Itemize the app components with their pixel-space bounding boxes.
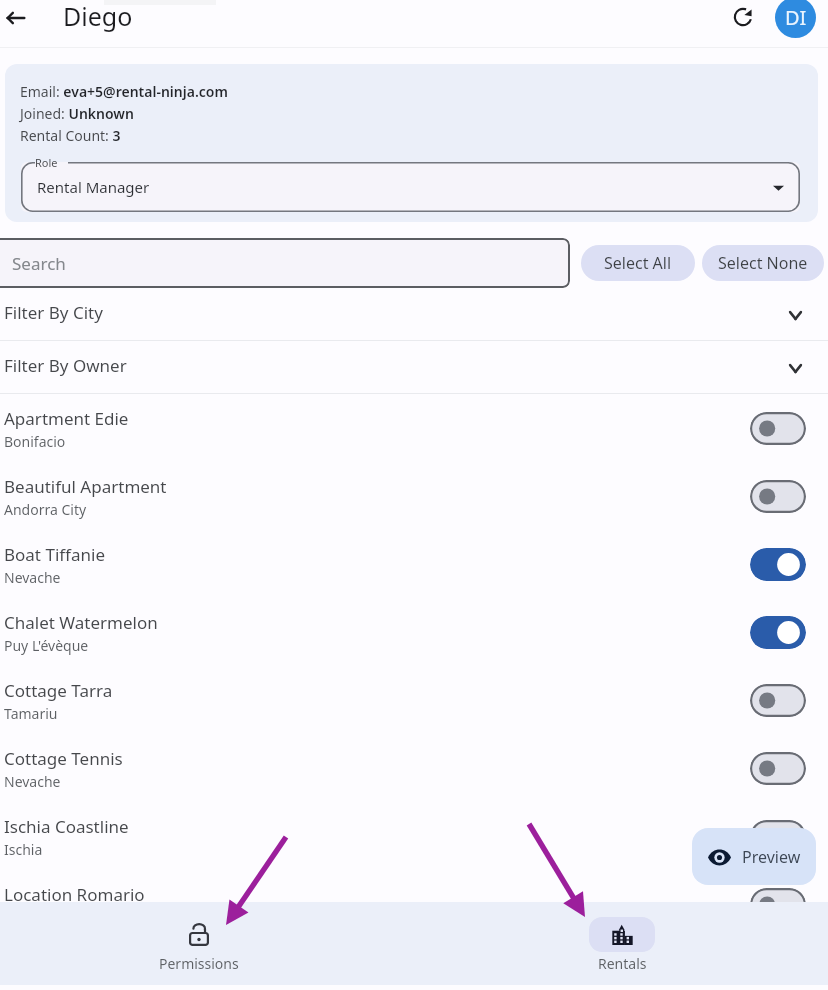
staticText: Nevache (4, 772, 61, 791)
staticText: Chalet Watermelon (4, 611, 158, 634)
staticText: Ischia Coastline (4, 815, 129, 838)
button[interactable]: Location Romario (0, 870, 828, 938)
staticText: Rentals (598, 954, 647, 973)
staticText: Diego (63, 0, 133, 33)
staticText: Permissions (159, 954, 239, 973)
button[interactable]: Boat Tiffanie (0, 530, 828, 598)
button[interactable]: Filter By City (0, 288, 828, 341)
staticText: Beautiful Apartment (4, 475, 167, 498)
staticText: Nevache (4, 568, 61, 587)
button[interactable]: Cottage Tarra (0, 666, 828, 734)
button[interactable]: Select None (702, 245, 824, 281)
button[interactable]: Role (21, 162, 800, 212)
staticText: Select None (718, 252, 808, 274)
staticText: Cottage Tarra (4, 679, 113, 702)
button[interactable]: Profile (775, 0, 816, 38)
button[interactable]: Select All (581, 245, 695, 281)
staticText: Bonifacio (4, 432, 66, 451)
button[interactable]: Off (750, 888, 806, 921)
button[interactable]: Off (750, 752, 806, 785)
button[interactable]: Off (750, 412, 806, 445)
staticText: Location Romario (4, 883, 145, 906)
button[interactable]: Preview (692, 828, 816, 885)
button[interactable]: Refresh (728, 2, 758, 32)
button[interactable]: Beautiful Apartment (0, 462, 828, 530)
button[interactable]: Rentals (552, 902, 692, 985)
button[interactable]: Back (0, 2, 32, 34)
staticText: Role (35, 155, 58, 170)
staticText: Cottage Tennis (4, 747, 123, 770)
button[interactable]: Ischia Coastline (0, 802, 828, 870)
button[interactable]: Chalet Watermelon (0, 598, 828, 666)
staticText: Ischia (4, 840, 43, 859)
button[interactable]: Search (0, 238, 570, 288)
staticText: Email: eva+5@rental-ninja.com (20, 82, 228, 101)
staticText: DI (785, 4, 807, 31)
button[interactable]: On (750, 548, 806, 581)
staticText: Rental Manager (37, 177, 150, 197)
button[interactable]: Off (750, 684, 806, 717)
staticText: Preview (742, 846, 801, 868)
button[interactable]: Off (750, 480, 806, 513)
staticText: Apartment Edie (4, 407, 129, 430)
button[interactable]: Filter By Owner (0, 341, 828, 394)
button[interactable]: Apartment Edie (0, 394, 828, 462)
staticText: Joined: Unknown (20, 104, 134, 123)
staticText: Select All (604, 252, 672, 274)
staticText: Rental Count: 3 (20, 126, 121, 145)
staticText: Boat Tiffanie (4, 543, 105, 566)
button[interactable]: Cottage Tennis (0, 734, 828, 802)
staticText: Search (12, 252, 66, 275)
staticText: Tamariu (4, 704, 58, 723)
button[interactable]: Permissions (129, 902, 269, 985)
staticText: Filter By City (4, 301, 103, 324)
button[interactable]: On (750, 616, 806, 649)
staticText: Puy L'évèque (4, 636, 89, 655)
staticText: Andorra City (4, 500, 87, 519)
staticText: Filter By Owner (4, 354, 127, 377)
button[interactable]: Off (750, 820, 806, 853)
